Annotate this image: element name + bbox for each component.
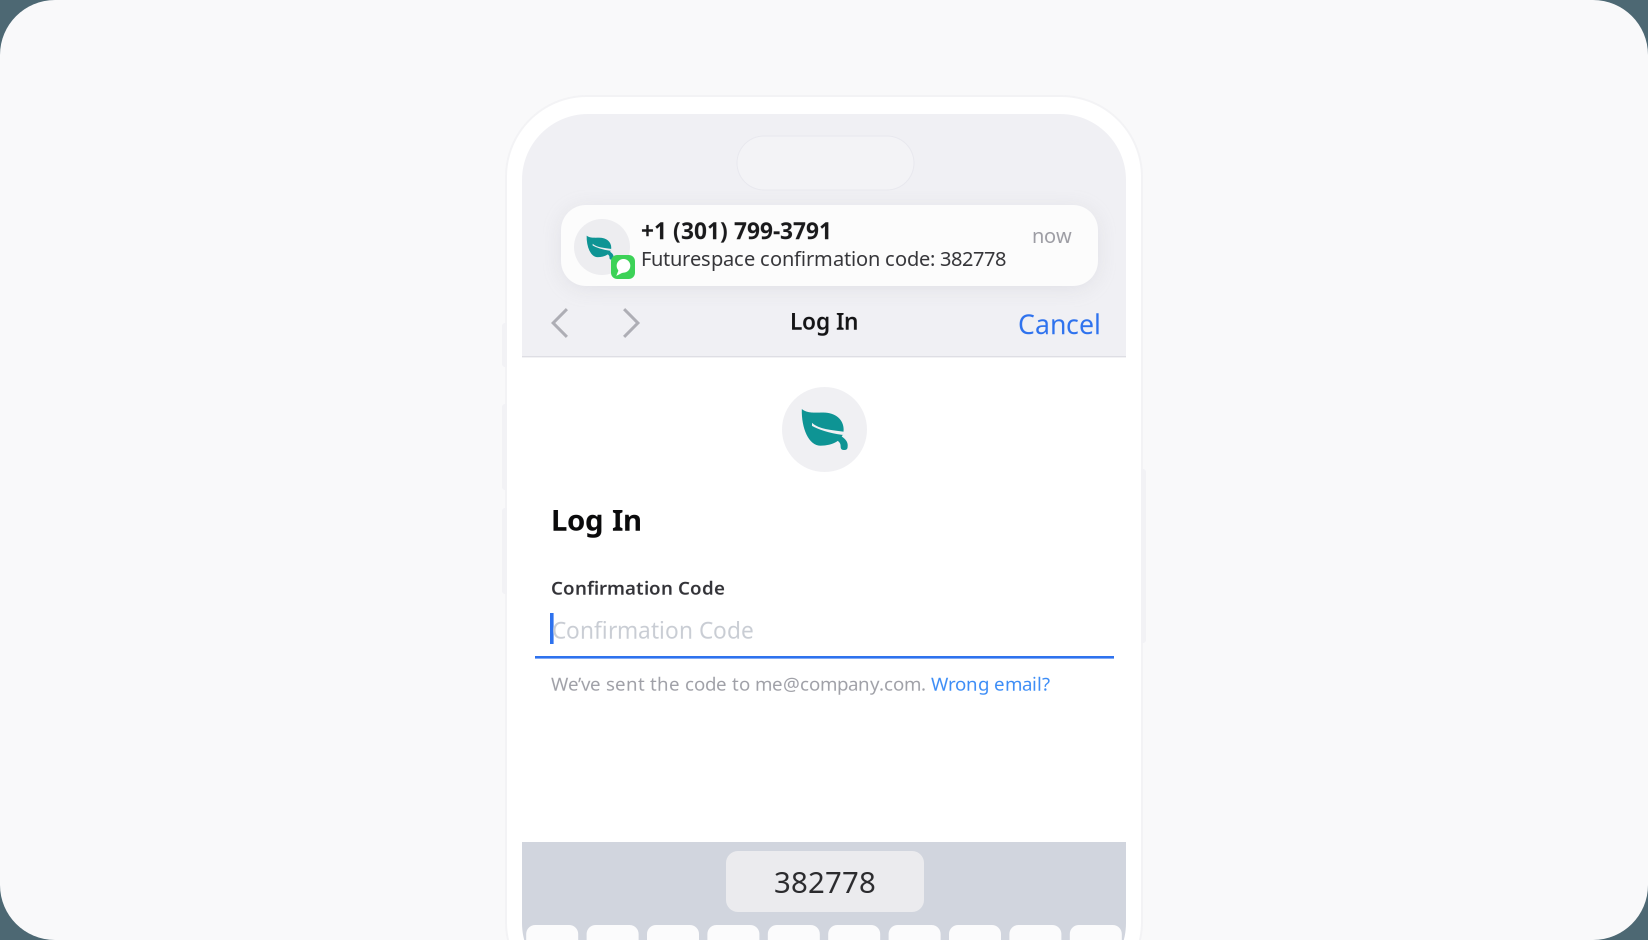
button[interactable]: +1 (301) 799-3791 [561,205,1098,286]
staticText: Log In [551,500,642,539]
staticText: now [1032,222,1072,249]
staticText: Confirmation Code [551,575,725,600]
staticText: Wrong email? [931,671,1050,696]
button[interactable]: Forward [607,297,655,349]
staticText: Confirmation Code [552,615,754,645]
staticText: Futurespace confirmation code: 382778 [641,245,1006,272]
button[interactable]: Cancel [991,298,1101,350]
button[interactable]: Back [536,297,584,349]
staticText: We’ve sent the code to me@company.com. [551,671,931,696]
staticText: Cancel [1018,306,1101,342]
staticText: Log In [790,306,858,336]
button[interactable]: Wrong email? [931,671,1050,696]
button[interactable]: 382778 [726,851,924,912]
staticText: 382778 [774,862,876,901]
staticText: +1 (301) 799-3791 [641,215,832,246]
